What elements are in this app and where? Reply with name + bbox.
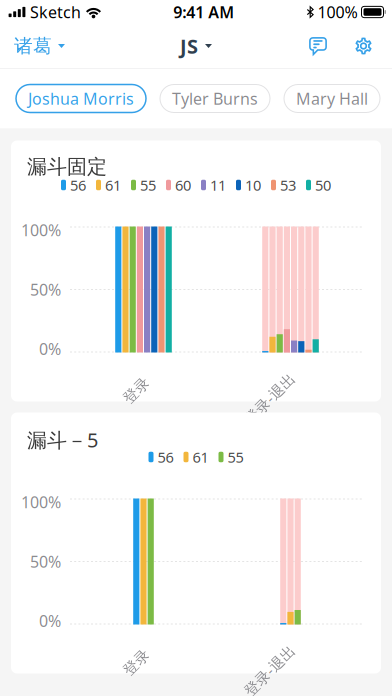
staticText: JS bbox=[180, 33, 198, 59]
button[interactable]: JS bbox=[170, 24, 222, 68]
staticText: 登录-退出 bbox=[237, 389, 302, 408]
button[interactable]: Settings bbox=[346, 24, 381, 68]
button[interactable]: Tyler Burns bbox=[160, 84, 270, 112]
staticText: Joshua Morris bbox=[28, 88, 134, 109]
staticText: 50% bbox=[30, 279, 61, 300]
staticText: 60 bbox=[175, 175, 191, 195]
staticText: 0% bbox=[39, 610, 61, 631]
staticText: 漏斗固定 bbox=[27, 154, 107, 179]
staticText: Tyler Burns bbox=[172, 88, 258, 109]
button[interactable]: Joshua Morris bbox=[16, 84, 146, 112]
staticText: Sketch bbox=[30, 1, 81, 23]
staticText: 55 bbox=[227, 447, 243, 467]
staticText: 登录 bbox=[121, 381, 151, 399]
staticText: 100% bbox=[21, 219, 61, 241]
staticText: 登录-退出 bbox=[237, 661, 302, 680]
button[interactable]: Messages bbox=[297, 24, 346, 68]
staticText: 登录 bbox=[121, 653, 151, 671]
staticText: 9:41 AM bbox=[173, 1, 234, 23]
staticText: 0% bbox=[39, 338, 61, 359]
staticText: 漏斗－5 bbox=[27, 426, 98, 453]
button[interactable]: Mary Hall bbox=[284, 84, 380, 112]
staticText: 50% bbox=[30, 551, 61, 572]
staticText: 55 bbox=[140, 175, 156, 195]
staticText: 61 bbox=[105, 175, 121, 195]
staticText: 100% bbox=[21, 491, 61, 513]
staticText: 100% bbox=[317, 1, 357, 23]
button[interactable]: 诸葛 bbox=[0, 24, 79, 68]
staticText: Mary Hall bbox=[296, 88, 368, 109]
staticText: 56 bbox=[157, 447, 173, 467]
staticText: 10 bbox=[245, 175, 261, 195]
staticText: 56 bbox=[70, 175, 86, 195]
staticText: 61 bbox=[192, 447, 208, 467]
staticText: 53 bbox=[280, 175, 296, 195]
staticText: 50 bbox=[315, 175, 331, 195]
staticText: 11 bbox=[210, 175, 226, 195]
staticText: 诸葛 bbox=[14, 34, 52, 57]
